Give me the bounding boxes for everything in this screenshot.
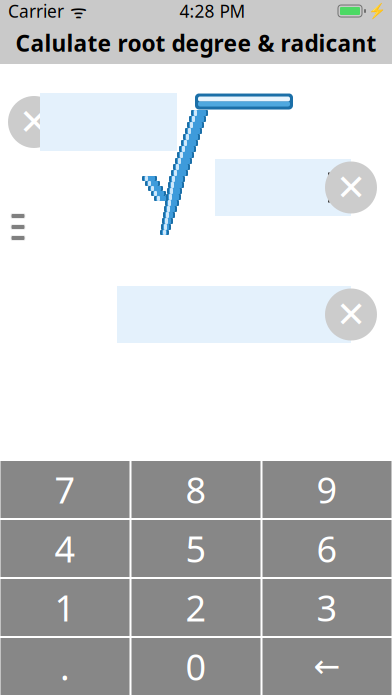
staticText: ⚡ bbox=[368, 3, 386, 19]
staticText: 7 bbox=[54, 466, 75, 513]
staticText: 3 bbox=[316, 584, 337, 631]
staticText: 5 bbox=[185, 525, 206, 572]
button[interactable]: 5 bbox=[131, 520, 260, 577]
staticText: 4:28 PM bbox=[179, 0, 245, 22]
staticText: 0 bbox=[185, 643, 206, 690]
staticText: ✕ bbox=[19, 102, 49, 142]
staticText: Calulate root degree & radicant bbox=[15, 28, 376, 58]
button[interactable]: Clear result bbox=[325, 288, 377, 340]
button[interactable]: Clear radicand bbox=[325, 161, 377, 213]
button[interactable]: 3 bbox=[262, 579, 391, 636]
button[interactable]: ← bbox=[262, 638, 391, 695]
button[interactable]: 9 bbox=[262, 461, 391, 518]
button[interactable]: . bbox=[0, 638, 129, 695]
staticText: 2 bbox=[185, 584, 206, 631]
staticText: 8 bbox=[185, 466, 206, 513]
staticText: 9 bbox=[316, 466, 337, 513]
staticText: ← bbox=[313, 648, 340, 685]
staticText: ✕ bbox=[336, 294, 366, 335]
button[interactable]: Result field bbox=[117, 286, 351, 343]
staticText: 1 bbox=[54, 584, 75, 631]
staticText: ✕ bbox=[336, 167, 366, 208]
button[interactable]: Clear root degree bbox=[8, 96, 60, 148]
staticText: 4 bbox=[54, 525, 75, 572]
button[interactable]: Radicand field bbox=[215, 159, 351, 216]
button[interactable]: 0 bbox=[131, 638, 260, 695]
button[interactable]: 6 bbox=[262, 520, 391, 577]
button[interactable]: 8 bbox=[131, 461, 260, 518]
button[interactable]: 1 bbox=[0, 579, 129, 636]
staticText: ᯤ bbox=[70, 0, 87, 23]
button[interactable]: 4 bbox=[0, 520, 129, 577]
staticText: Carrier bbox=[8, 0, 64, 22]
button[interactable]: 2 bbox=[131, 579, 260, 636]
staticText: 6 bbox=[316, 525, 337, 572]
button[interactable]: Menu bbox=[6, 212, 30, 242]
staticText: . bbox=[60, 643, 70, 690]
button[interactable]: 7 bbox=[0, 461, 129, 518]
